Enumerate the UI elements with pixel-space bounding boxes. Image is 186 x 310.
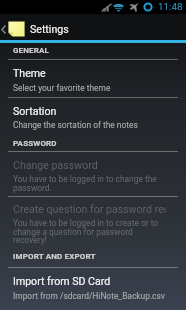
button[interactable]: Navigate up (0, 14, 27, 40)
staticText: Change password (13, 159, 98, 171)
staticText: Select your favorite theme (13, 83, 111, 93)
button[interactable] (0, 152, 186, 196)
button[interactable] (0, 197, 186, 250)
staticText: Create question for password recovery (13, 203, 166, 215)
staticText: You have to be logged in to change the (13, 174, 157, 184)
staticText: IMPORT AND EXPORT (13, 252, 96, 261)
button[interactable] (0, 98, 186, 133)
staticText: recovery! (13, 235, 47, 245)
staticText: change a question for password (13, 227, 133, 237)
button[interactable] (0, 268, 186, 310)
staticText: Import from /sdcard/HiNote_Backup.csv (13, 291, 165, 301)
staticText: Import from SD Card (13, 275, 111, 287)
staticText: You have to be logged in to create or to (13, 218, 159, 228)
staticText: PASSWORD (13, 139, 57, 148)
staticText: 11:48 (158, 1, 183, 12)
staticText: GENERAL (13, 46, 49, 55)
button[interactable] (0, 60, 186, 97)
staticText: Sortation (13, 105, 57, 117)
staticText: Settings (30, 23, 69, 35)
staticText: Change the sortation of the notes (13, 120, 138, 130)
staticText: Theme (13, 67, 46, 79)
staticText: password. (13, 183, 52, 193)
